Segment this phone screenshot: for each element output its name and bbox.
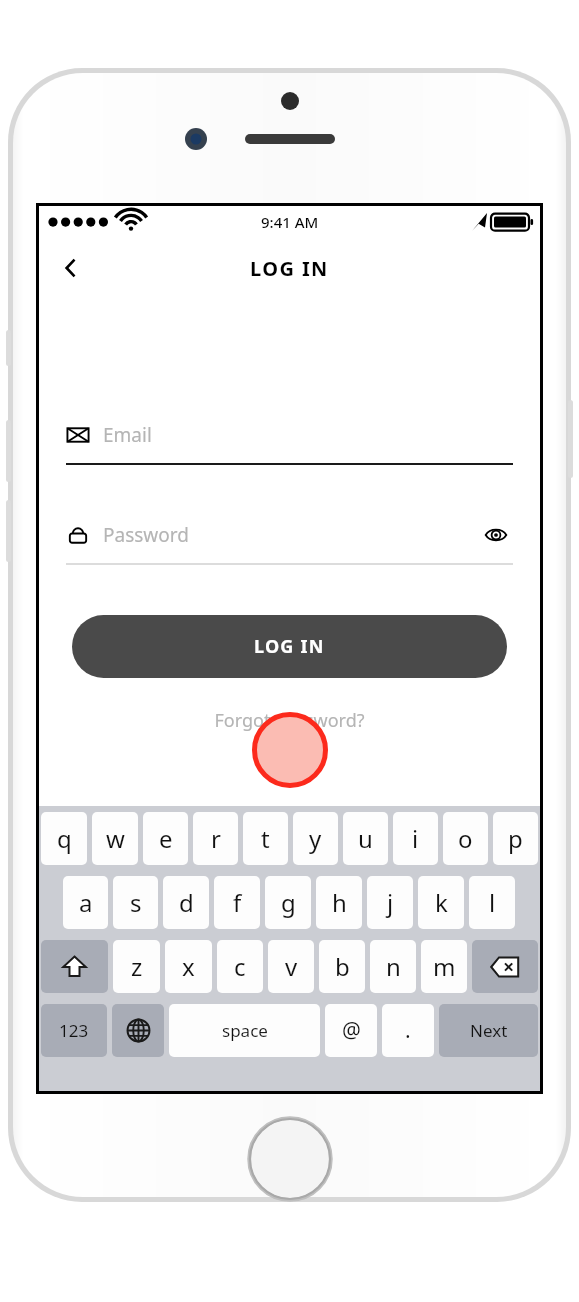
staticText: q — [57, 822, 72, 855]
staticText: j — [387, 886, 394, 919]
button[interactable]: space — [169, 1004, 320, 1057]
button[interactable]: a — [63, 876, 108, 929]
staticText: z — [131, 950, 143, 983]
button[interactable]: w — [92, 812, 138, 865]
button[interactable]: f — [214, 876, 260, 929]
button[interactable]: Back — [47, 244, 95, 292]
staticText: t — [261, 822, 270, 855]
button[interactable]: Forgot password? — [214, 708, 365, 733]
button[interactable]: u — [343, 812, 388, 865]
staticText: g — [281, 886, 296, 919]
button[interactable]: p — [493, 812, 538, 865]
button[interactable]: Next — [439, 1004, 538, 1057]
button[interactable]: r — [193, 812, 238, 865]
staticText: Password — [103, 522, 189, 548]
button[interactable]: o — [443, 812, 488, 865]
button[interactable]: z — [113, 940, 160, 993]
button[interactable]: l — [469, 876, 515, 929]
button[interactable]: . — [382, 1004, 434, 1057]
button[interactable]: Shift — [41, 940, 108, 993]
staticText: i — [412, 822, 419, 855]
staticText: n — [386, 950, 401, 983]
staticText: space — [222, 1019, 268, 1042]
button[interactable]: y — [293, 812, 338, 865]
button[interactable]: g — [265, 876, 311, 929]
button[interactable]: Backspace — [472, 940, 538, 993]
staticText: @ — [342, 1016, 361, 1045]
button[interactable]: x — [165, 940, 212, 993]
staticText: LOG IN — [254, 634, 325, 659]
button[interactable]: h — [316, 876, 362, 929]
button[interactable]: n — [370, 940, 416, 993]
staticText: y — [309, 822, 322, 855]
button[interactable]: LOG IN — [72, 615, 507, 678]
button[interactable]: i — [393, 812, 438, 865]
staticText: a — [79, 886, 93, 919]
button[interactable]: Email — [66, 415, 513, 455]
staticText: l — [489, 886, 496, 919]
staticText: r — [211, 822, 221, 855]
button[interactable]: Show password — [479, 518, 513, 552]
button[interactable]: @ — [325, 1004, 377, 1057]
staticText: b — [335, 950, 350, 983]
button[interactable]: m — [421, 940, 467, 993]
staticText: . — [405, 1016, 411, 1045]
staticText: 9:41 AM — [261, 212, 319, 232]
staticText: w — [106, 822, 125, 855]
staticText: e — [159, 822, 173, 855]
staticText: h — [332, 886, 347, 919]
staticText: u — [358, 822, 373, 855]
button[interactable]: c — [217, 940, 263, 993]
staticText: Forgot password? — [214, 708, 365, 733]
staticText: p — [508, 822, 523, 855]
staticText: m — [433, 950, 456, 983]
staticText: v — [285, 950, 298, 983]
staticText: o — [458, 822, 473, 855]
button[interactable]: b — [319, 940, 365, 993]
button[interactable]: Change keyboard language — [112, 1004, 164, 1057]
button[interactable]: 123 — [41, 1004, 107, 1057]
staticText: s — [130, 886, 142, 919]
button[interactable]: j — [367, 876, 413, 929]
button[interactable]: s — [113, 876, 158, 929]
staticText: LOG IN — [250, 255, 329, 282]
staticText: f — [233, 886, 242, 919]
staticText: c — [234, 950, 246, 983]
staticText: d — [179, 886, 194, 919]
staticText: k — [435, 886, 448, 919]
button[interactable]: Password — [66, 515, 513, 555]
staticText: Next — [470, 1019, 508, 1042]
button[interactable]: v — [268, 940, 314, 993]
staticText: Email — [103, 422, 152, 448]
button[interactable]: d — [163, 876, 209, 929]
button[interactable]: e — [143, 812, 188, 865]
button[interactable]: k — [418, 876, 464, 929]
staticText: x — [182, 950, 195, 983]
button[interactable]: q — [41, 812, 87, 865]
button[interactable]: t — [243, 812, 288, 865]
staticText: 123 — [59, 1019, 89, 1042]
